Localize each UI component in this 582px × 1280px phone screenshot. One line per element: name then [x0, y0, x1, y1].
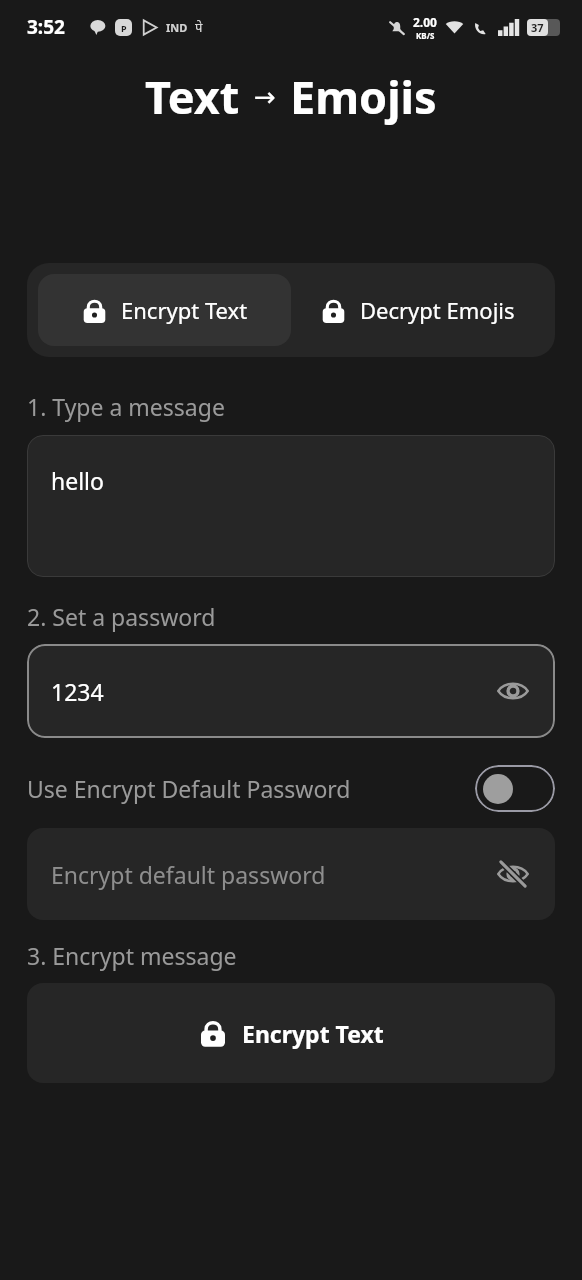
- staticText: Emojis: [290, 66, 437, 127]
- button[interactable]: 1234: [27, 644, 555, 738]
- staticText: 3. Encrypt message: [27, 940, 237, 971]
- staticText: IND: [166, 20, 188, 35]
- staticText: Encrypt default password: [51, 859, 326, 890]
- staticText: Use Encrypt Default Password: [27, 773, 351, 804]
- button[interactable]: Hide default password: [493, 854, 533, 894]
- staticText: Encrypt Text: [242, 1018, 384, 1049]
- staticText: 1234: [51, 676, 104, 707]
- button[interactable]: Use default password: [475, 765, 555, 812]
- staticText: Text: [145, 66, 240, 127]
- button[interactable]: Show password: [493, 671, 533, 711]
- staticText: →: [254, 82, 276, 112]
- staticText: Decrypt Emojis: [360, 295, 515, 325]
- staticText: 2.00: [413, 14, 437, 30]
- button[interactable]: Encrypt Text: [38, 274, 291, 346]
- button[interactable]: Encrypt Text: [27, 983, 555, 1083]
- button[interactable]: Use Encrypt Default Password: [27, 760, 555, 816]
- staticText: 37: [531, 20, 544, 35]
- staticText: पे: [195, 18, 203, 36]
- staticText: 1. Type a message: [27, 391, 225, 422]
- staticText: 2. Set a password: [27, 601, 216, 632]
- staticText: 3:52: [27, 14, 65, 40]
- staticText: hello: [51, 465, 104, 496]
- button[interactable]: Decrypt Emojis: [291, 274, 544, 346]
- button[interactable]: Encrypt default password: [27, 828, 555, 920]
- button[interactable]: hello: [27, 435, 555, 577]
- staticText: Encrypt Text: [121, 295, 248, 325]
- staticText: P: [121, 22, 127, 34]
- staticText: KB/S: [416, 30, 435, 41]
